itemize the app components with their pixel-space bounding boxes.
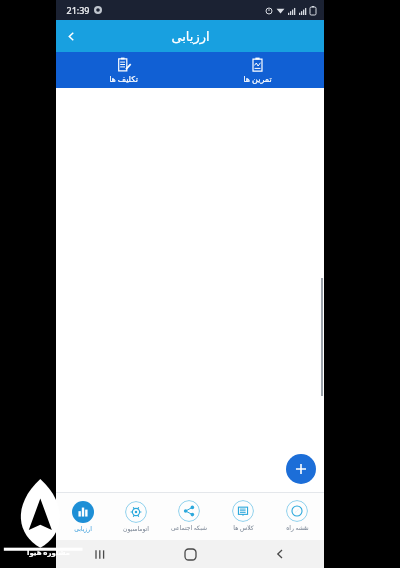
button[interactable]: Add: [286, 454, 316, 484]
staticText: اتوماسیون: [123, 525, 149, 532]
button[interactable]: Back: [56, 21, 86, 51]
staticText: تمرین ها: [243, 73, 272, 84]
button[interactable]: Recents: [56, 540, 146, 568]
button[interactable]: تکلیف ها: [56, 52, 190, 88]
button[interactable]: کلاس ها: [216, 492, 270, 540]
button[interactable]: اتوماسیون: [109, 492, 162, 540]
staticText: تکلیف ها: [109, 73, 138, 84]
button[interactable]: تمرین ها: [190, 52, 324, 88]
button[interactable]: ارزیابی: [56, 492, 109, 540]
staticText: کلاس ها: [233, 524, 254, 532]
staticText: نقشه راه: [286, 524, 309, 532]
staticText: ارزیابی: [171, 29, 210, 44]
button[interactable]: Back: [235, 540, 324, 568]
button[interactable]: نقشه راه: [270, 492, 324, 540]
button[interactable]: Home: [146, 540, 235, 568]
staticText: مشاوره هیوا: [27, 548, 70, 558]
staticText: ارزیابی: [74, 525, 92, 532]
staticText: شبکه اجتماعی: [171, 524, 207, 532]
staticText: 21:39: [66, 4, 90, 16]
button[interactable]: شبکه اجتماعی: [162, 492, 216, 540]
